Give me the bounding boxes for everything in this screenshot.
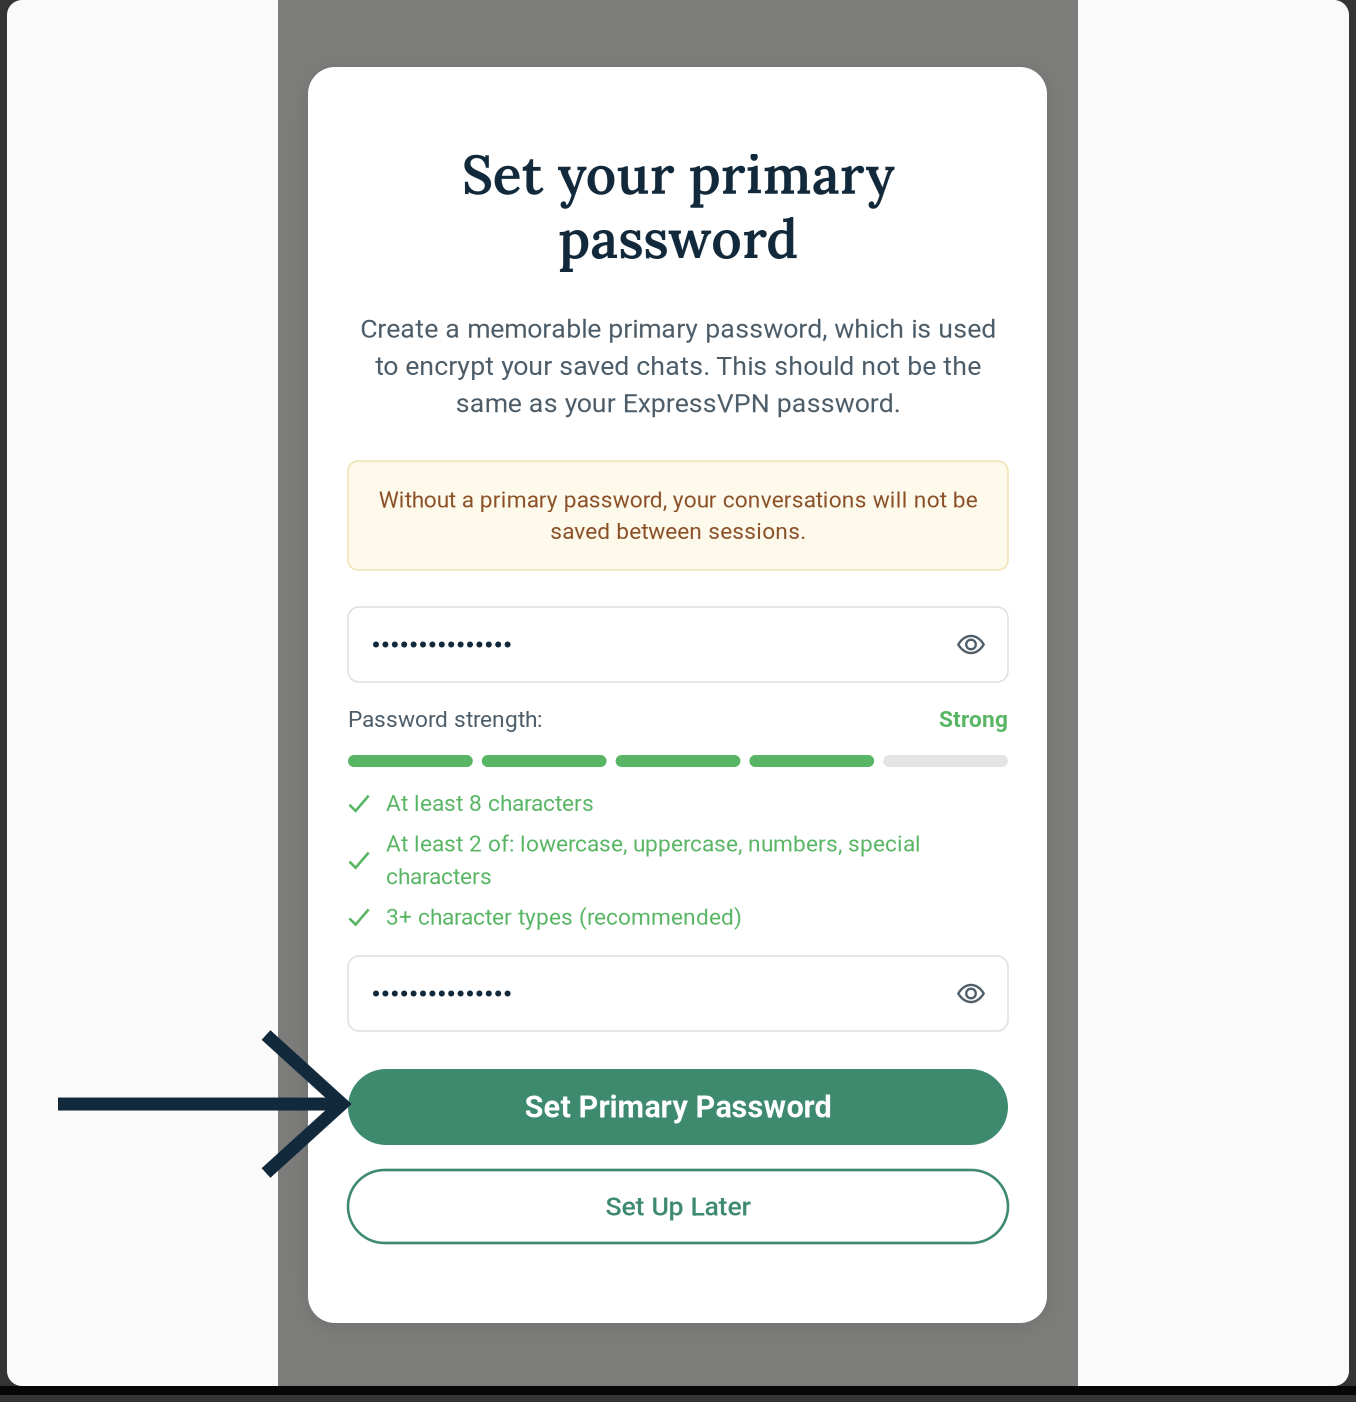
staticText: Set your primary password	[461, 140, 894, 272]
staticText: Strong	[939, 706, 1008, 733]
staticText: Without a primary password, your convers…	[378, 486, 977, 544]
button[interactable]: Set Up Later	[348, 1170, 1008, 1243]
button[interactable]: Set Primary Password	[348, 1069, 1008, 1145]
staticText: At least 8 characters	[386, 790, 594, 817]
staticText: 3+ character types (recommended)	[386, 904, 742, 930]
staticText: At least 2 of: lowercase, uppercase, num…	[386, 831, 921, 890]
staticText: Password strength:	[348, 706, 542, 733]
button[interactable]: Password field, show password	[348, 956, 1008, 1031]
staticText: Set Up Later	[605, 1191, 750, 1222]
button[interactable]: Password field, show password	[348, 607, 1008, 682]
staticText: Set Primary Password	[524, 1089, 831, 1125]
staticText: Create a memorable primary password, whi…	[360, 313, 996, 419]
